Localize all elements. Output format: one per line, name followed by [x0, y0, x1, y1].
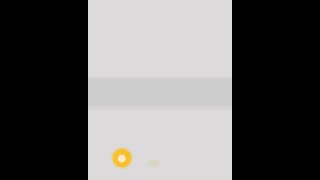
button[interactable]: New item — [143, 152, 169, 174]
button[interactable]: Add — [110, 146, 134, 170]
